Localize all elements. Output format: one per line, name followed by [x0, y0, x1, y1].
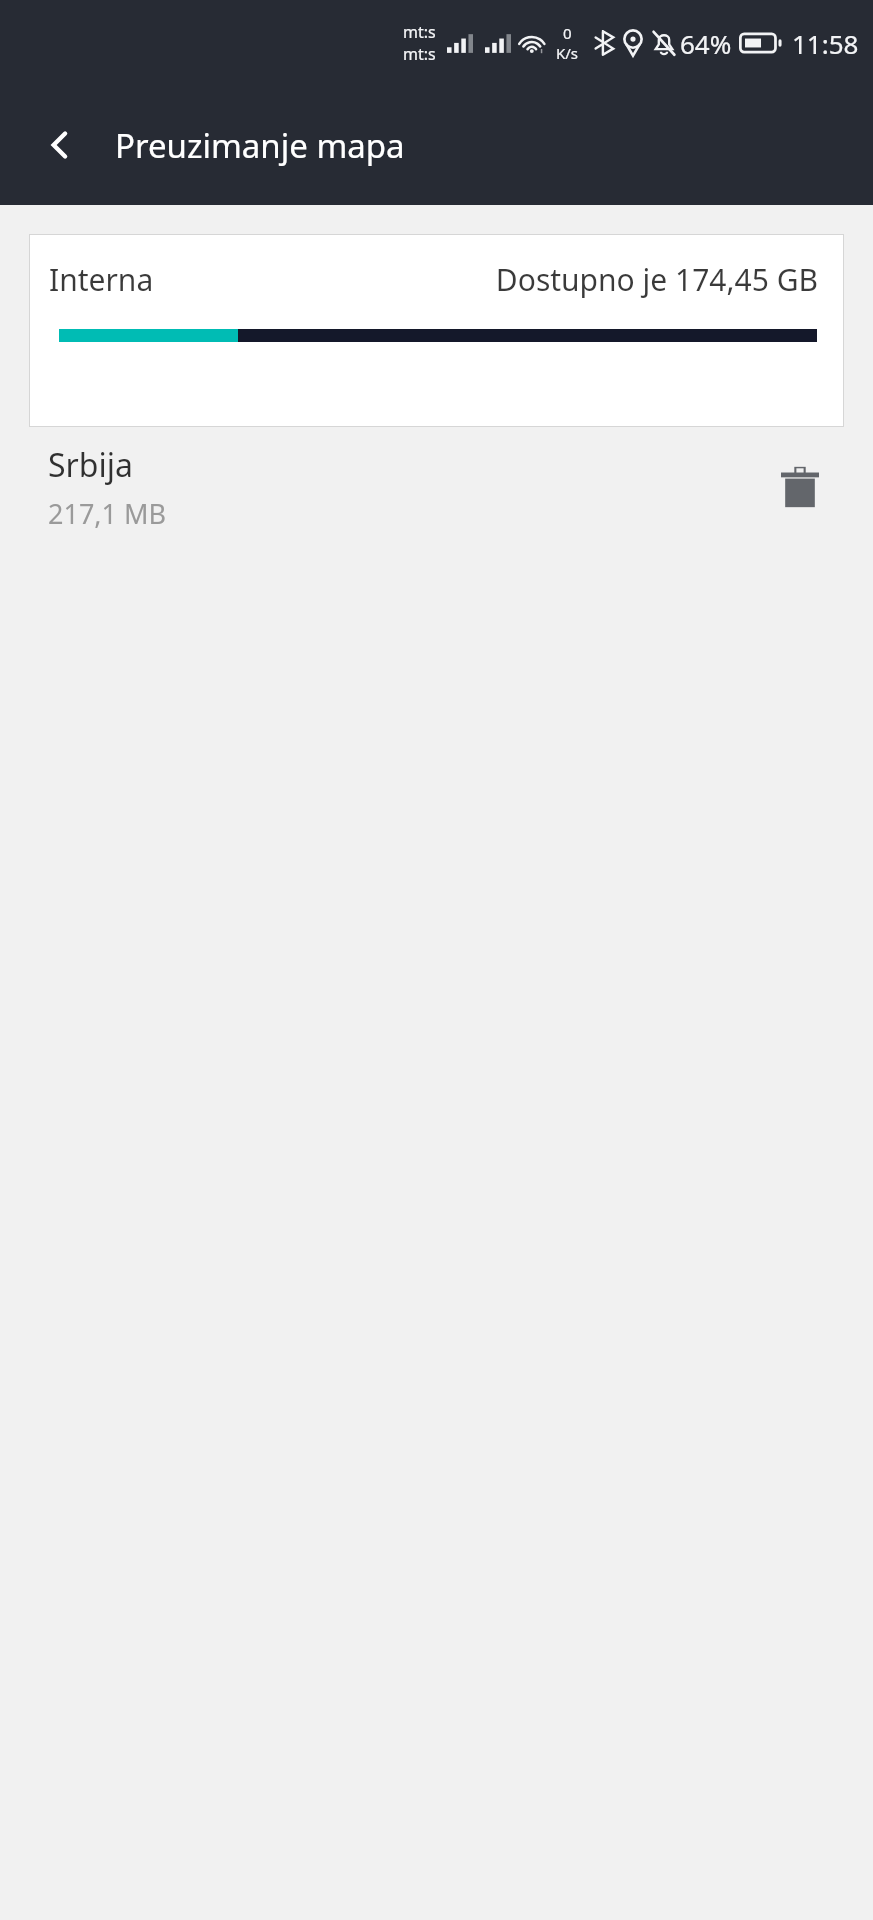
button[interactable]: Delete [769, 456, 831, 518]
staticText: Dostupno je 174,45 GB [495, 259, 818, 300]
staticText: 64% [680, 26, 732, 61]
staticText: 11:58 [792, 26, 859, 61]
staticText: Srbija [48, 443, 133, 487]
staticText: mt:s [403, 21, 436, 43]
staticText: K/s [556, 43, 579, 63]
staticText: 0 [563, 23, 572, 43]
button[interactable]: Back [22, 107, 98, 183]
staticText: 217,1 MB [48, 495, 167, 532]
staticText: mt:s [403, 43, 436, 65]
staticText: Preuzimanje mapa [115, 123, 405, 168]
button[interactable]: Interna [30, 235, 843, 426]
staticText: Interna [49, 259, 154, 300]
button[interactable]: Srbija [0, 427, 873, 547]
